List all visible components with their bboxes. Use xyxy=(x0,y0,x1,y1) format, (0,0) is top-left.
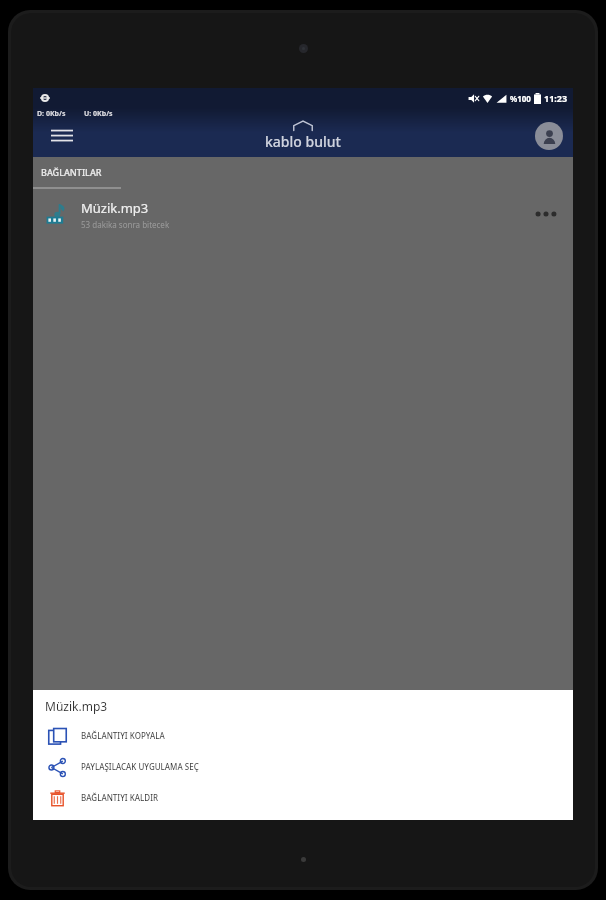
staticText: BAĞLANTILAR xyxy=(41,166,102,178)
button[interactable]: PAYLAŞILACAK UYGULAMA SEÇ xyxy=(45,751,573,782)
button[interactable]: More options xyxy=(529,197,563,231)
staticText: 11:23 xyxy=(544,92,568,104)
staticText: kablo bulut xyxy=(265,132,341,151)
staticText: BAĞLANTIYI KOPYALA xyxy=(81,730,165,741)
staticText: Müzik.mp3 xyxy=(45,698,108,714)
button[interactable]: Menu xyxy=(45,119,79,153)
staticText: D: 0Kb/s xyxy=(37,109,66,119)
button[interactable]: Müzik.mp3 xyxy=(33,189,573,239)
staticText: U: 0Kb/s xyxy=(84,109,113,119)
staticText: PAYLAŞILACAK UYGULAMA SEÇ xyxy=(81,761,199,772)
button[interactable]: BAĞLANTILAR xyxy=(33,157,121,187)
button[interactable]: Account xyxy=(535,122,563,150)
button[interactable]: BAĞLANTIYI KOPYALA xyxy=(45,720,573,751)
staticText: %100 xyxy=(510,93,531,104)
staticText: BAĞLANTIYI KALDIR xyxy=(81,792,159,803)
staticText: Müzik.mp3 xyxy=(81,199,149,217)
staticText: 53 dakika sonra bitecek xyxy=(81,219,170,230)
button[interactable]: BAĞLANTIYI KALDIR xyxy=(45,782,573,813)
